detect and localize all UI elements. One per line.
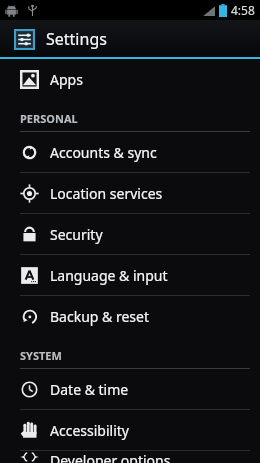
button[interactable]: Apps (0, 59, 260, 99)
staticText: Accounts & sync (50, 143, 157, 162)
button[interactable]: Language & input (0, 255, 260, 295)
button[interactable]: Developer options (0, 451, 260, 463)
staticText: Backup & reset (50, 307, 149, 326)
button[interactable]: Date & time (0, 369, 260, 409)
staticText: Accessibility (50, 421, 129, 440)
button[interactable]: Backup & reset (0, 296, 260, 336)
staticText: Security (50, 225, 103, 244)
staticText: Date & time (50, 380, 129, 399)
staticText: PERSONAL (20, 111, 78, 126)
staticText: Location services (50, 184, 163, 203)
button[interactable]: Security (0, 214, 260, 254)
staticText: Developer options (50, 451, 171, 463)
button[interactable]: Accessibility (0, 410, 260, 450)
staticText: Language & input (50, 266, 168, 285)
staticText: Apps (50, 70, 83, 89)
button[interactable]: Accounts & sync (0, 132, 260, 172)
button[interactable]: Settings (0, 20, 260, 57)
staticText: Settings (46, 28, 107, 50)
button[interactable]: Location services (0, 173, 260, 213)
staticText: SYSTEM (20, 348, 62, 363)
staticText: 4:58 (231, 2, 255, 18)
